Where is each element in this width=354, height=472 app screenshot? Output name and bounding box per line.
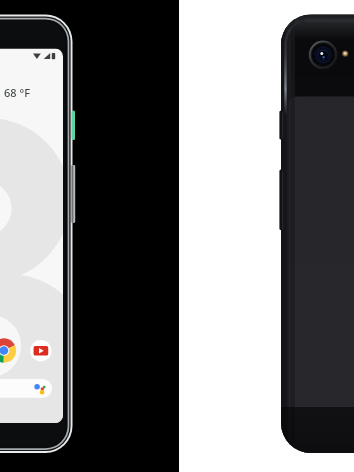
staticText: 68 °F: [4, 85, 30, 100]
